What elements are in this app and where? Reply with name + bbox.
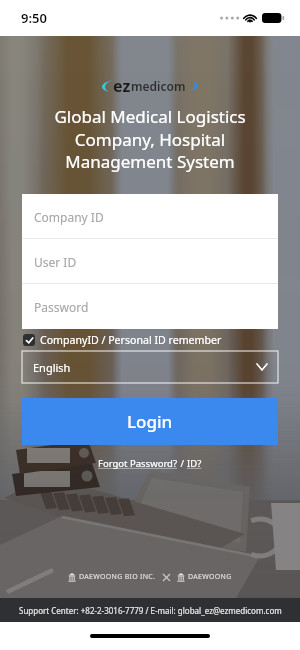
button[interactable]: Forgot Password? [98,457,178,470]
button[interactable]: Company ID [22,194,278,239]
staticText: English [33,360,71,375]
staticText: Support Center: +82-2-3016-7779 / E-mail… [19,605,282,616]
button[interactable]: ID? [187,457,202,470]
button[interactable]: English [22,351,278,383]
button[interactable]: Login [22,398,278,445]
staticText: DAEWOONG [188,572,232,582]
staticText: / [178,457,187,470]
staticText: Password [34,299,89,315]
staticText: Global Medical Logistics Company, Hospit… [0,105,300,173]
staticText: 9:50 [21,9,47,27]
staticText: CompanyID / Personal ID remember [40,333,222,347]
staticText: DAEWOONG BIO INC. [79,572,156,582]
staticText: User ID [34,254,77,270]
staticText: Company ID [34,209,104,225]
staticText: Login [127,410,173,433]
button[interactable]: User ID [22,239,278,284]
button[interactable]: Password [22,284,278,329]
staticText: ez [113,75,131,97]
staticText: medicom [131,78,186,94]
button[interactable]: CompanyID / Personal ID remember [22,331,278,349]
